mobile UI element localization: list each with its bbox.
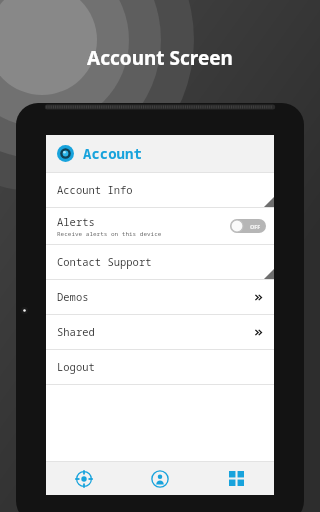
- button[interactable]: Apps: [198, 462, 274, 495]
- button[interactable]: Demos: [46, 280, 274, 314]
- staticText: Demos: [57, 290, 89, 304]
- button[interactable]: Alerts toggle, off: [230, 219, 266, 233]
- staticText: Account: [83, 144, 142, 163]
- staticText: Account Info: [57, 183, 133, 197]
- staticText: OFF: [250, 223, 261, 230]
- button[interactable]: Account: [46, 135, 274, 172]
- staticText: Account Screen: [87, 45, 233, 71]
- button[interactable]: Alerts: [46, 208, 274, 244]
- staticText: Alerts: [57, 215, 95, 229]
- button[interactable]: Locate: [46, 462, 122, 495]
- staticText: Shared: [57, 325, 95, 339]
- button[interactable]: Account Info: [46, 173, 274, 207]
- staticText: Receive alerts on this device: [57, 230, 162, 238]
- staticText: Logout: [57, 360, 95, 374]
- button[interactable]: Shared: [46, 315, 274, 349]
- button[interactable]: Profile: [122, 462, 198, 495]
- button[interactable]: Logout: [46, 350, 274, 384]
- staticText: Contact Support: [57, 255, 152, 269]
- button[interactable]: Contact Support: [46, 245, 274, 279]
